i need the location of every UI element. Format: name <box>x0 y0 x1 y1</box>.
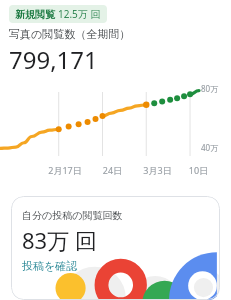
staticText: 83万 回 <box>22 225 97 255</box>
staticText: 3月3日 <box>135 164 180 176</box>
staticText: 80万 <box>201 83 219 94</box>
button[interactable]: 新規閲覧 <box>9 5 107 23</box>
staticText: 投稿を確認 <box>22 259 78 273</box>
staticText: 自分の投稿の閲覧回数 <box>22 209 123 222</box>
staticText: 799,171 <box>9 43 98 76</box>
staticText: 写真の閲覧数（全期間） <box>9 27 131 41</box>
staticText: 10日 <box>180 164 217 176</box>
staticText: 40万 <box>201 142 219 153</box>
staticText: 新規閲覧 <box>15 8 55 21</box>
staticText: 2月17日 <box>40 164 90 176</box>
staticText: 24日 <box>90 164 135 176</box>
staticText: 12.5万 回 <box>58 7 101 21</box>
button[interactable]: 投稿を確認 <box>22 259 78 273</box>
button[interactable]: 自分の投稿の閲覧回数 <box>11 196 220 300</box>
